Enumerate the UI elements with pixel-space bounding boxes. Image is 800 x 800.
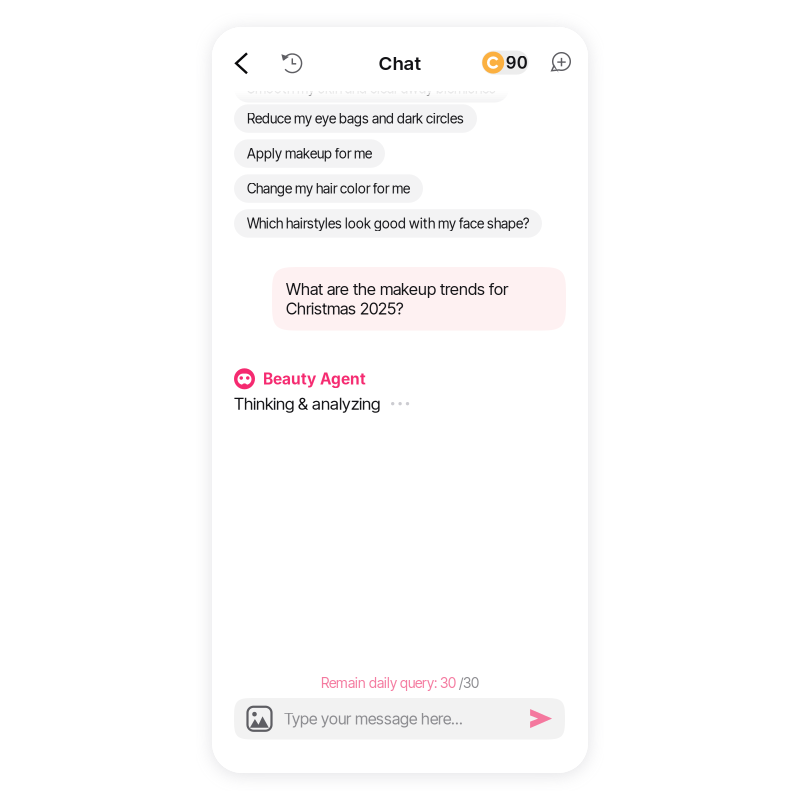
staticText: Apply makeup for me	[247, 145, 372, 162]
button[interactable]: Back	[226, 47, 256, 81]
staticText: Reduce my eye bags and dark circles	[247, 110, 464, 127]
button[interactable]: Chat history	[277, 46, 307, 80]
staticText: Thinking & analyzing	[234, 393, 380, 414]
button[interactable]: Change my hair color for me	[234, 174, 423, 203]
button[interactable]: Apply makeup for me	[234, 139, 385, 168]
staticText: Beauty Agent	[263, 369, 366, 388]
button[interactable]: Smooth my skin and clear away blemishes	[234, 74, 509, 102]
button[interactable]: New chat	[546, 46, 576, 80]
staticText: What are the makeup trends for Christmas…	[286, 279, 508, 318]
staticText: Change my hair color for me	[247, 180, 410, 197]
staticText: Remain daily query: 30	[321, 674, 456, 691]
staticText: Chat	[378, 52, 421, 74]
staticText: Smooth my skin and clear away blemishes	[247, 80, 496, 96]
button[interactable]: Send message	[526, 698, 556, 739]
staticText: 90	[506, 52, 528, 73]
button[interactable]: Credits: 90	[482, 51, 529, 75]
button[interactable]: Attach photo	[244, 698, 274, 739]
button[interactable]: Which hairstyles look good with my face …	[234, 209, 542, 238]
staticText: Type your message here...	[284, 709, 463, 728]
staticText: Which hairstyles look good with my face …	[247, 215, 529, 232]
button[interactable]: Reduce my eye bags and dark circles	[234, 104, 477, 133]
staticText: /30	[456, 674, 479, 691]
